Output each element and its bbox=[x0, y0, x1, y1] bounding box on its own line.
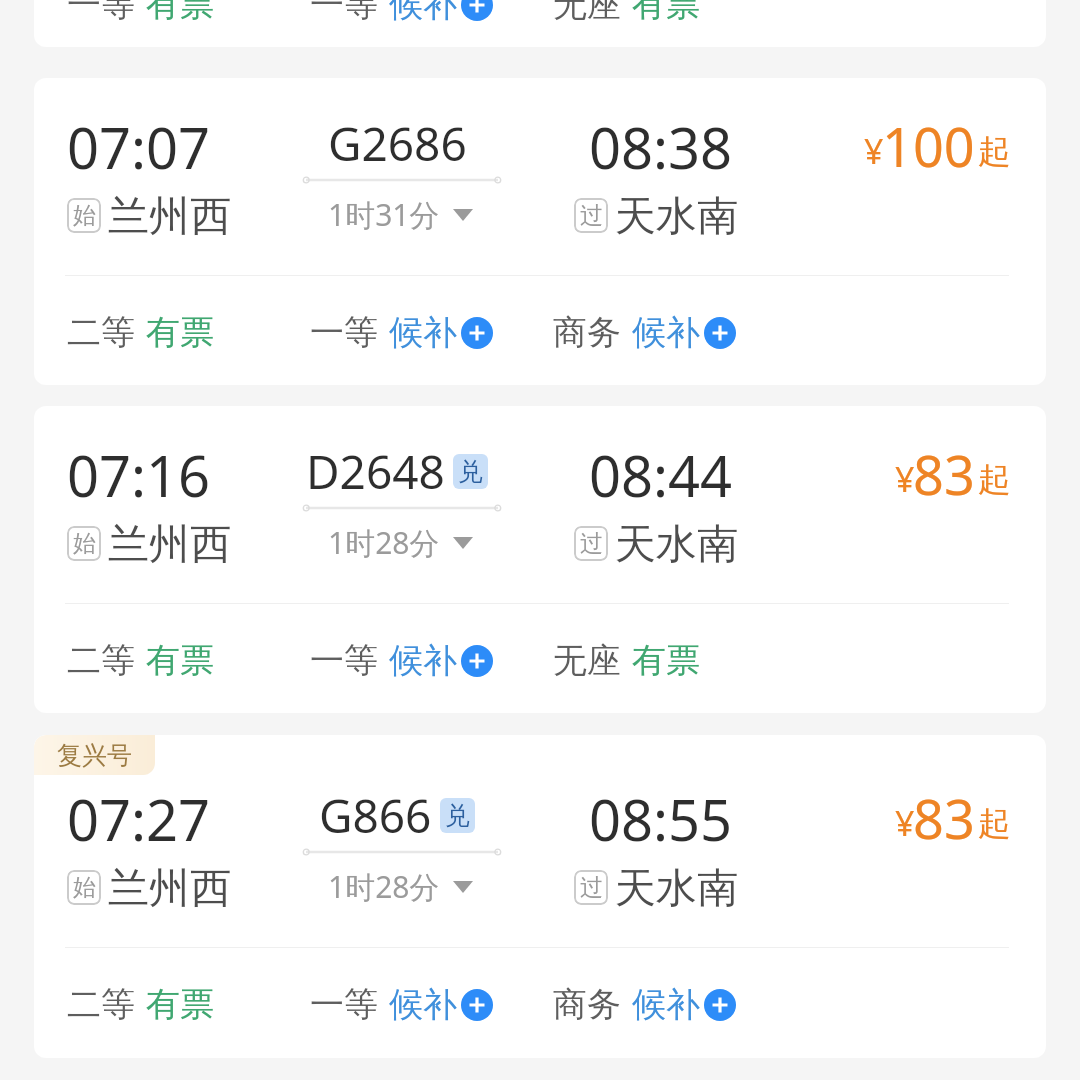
staticText: 无座 bbox=[553, 639, 621, 682]
button[interactable]: 一等 bbox=[67, 0, 214, 26]
staticText: 候补 bbox=[389, 0, 457, 26]
staticText: 商务 bbox=[553, 983, 621, 1026]
button[interactable]: 一等 bbox=[310, 0, 493, 26]
staticText: 天水南 bbox=[615, 191, 738, 243]
button[interactable]: 无座 bbox=[553, 0, 700, 26]
staticText: 二等 bbox=[67, 311, 135, 354]
staticText: 有票 bbox=[146, 639, 214, 682]
button[interactable]: 07:07 bbox=[34, 78, 1046, 385]
staticText: 起 bbox=[978, 131, 1011, 173]
staticText: 天水南 bbox=[615, 519, 738, 571]
button[interactable]: 候补购票 bbox=[704, 989, 736, 1021]
staticText: 过 bbox=[580, 201, 603, 230]
staticText: 一等 bbox=[67, 0, 135, 26]
button[interactable]: 二等 bbox=[67, 639, 214, 682]
staticText: 有票 bbox=[146, 983, 214, 1026]
button[interactable]: 商务 bbox=[553, 311, 736, 354]
staticText: 始 bbox=[73, 529, 96, 558]
staticText: 兰州西 bbox=[108, 519, 231, 571]
staticText: G866 bbox=[319, 784, 432, 847]
staticText: 过 bbox=[580, 529, 603, 558]
staticText: 兑 bbox=[458, 456, 483, 487]
button[interactable]: 二等 bbox=[67, 311, 214, 354]
button[interactable]: 候补购票 bbox=[461, 317, 493, 349]
staticText: 始 bbox=[73, 201, 96, 230]
button[interactable]: 候补购票 bbox=[461, 989, 493, 1021]
button[interactable]: 商务 bbox=[553, 983, 736, 1026]
staticText: 有票 bbox=[146, 311, 214, 354]
button[interactable]: 07:00 bbox=[34, 0, 1046, 47]
staticText: 有票 bbox=[632, 0, 700, 26]
staticText: 候补 bbox=[389, 983, 457, 1026]
staticText: 07:16 bbox=[67, 437, 211, 513]
staticText: 候补 bbox=[389, 311, 457, 354]
staticText: 复兴号 bbox=[57, 740, 132, 771]
staticText: ¥ bbox=[895, 800, 915, 846]
staticText: 一等 bbox=[310, 0, 378, 26]
staticText: 兰州西 bbox=[108, 191, 231, 243]
staticText: 始 bbox=[73, 873, 96, 902]
button[interactable]: 一等 bbox=[310, 639, 493, 682]
button[interactable]: 复兴号 bbox=[34, 735, 1046, 1058]
button[interactable]: 候补购票 bbox=[461, 0, 493, 21]
staticText: ¥ bbox=[864, 128, 884, 174]
button[interactable]: 二等 bbox=[67, 983, 214, 1026]
staticText: 二等 bbox=[67, 639, 135, 682]
staticText: D2648 bbox=[306, 440, 445, 503]
button[interactable]: 候补购票 bbox=[461, 645, 493, 677]
button[interactable]: 一等 bbox=[310, 311, 493, 354]
staticText: 起 bbox=[978, 459, 1011, 501]
button[interactable]: 07:16 bbox=[34, 406, 1046, 713]
staticText: 08:38 bbox=[589, 109, 733, 185]
staticText: 天水南 bbox=[615, 863, 738, 915]
staticText: 无座 bbox=[553, 0, 621, 26]
staticText: 起 bbox=[978, 803, 1011, 845]
staticText: 100 bbox=[882, 109, 975, 183]
staticText: 有票 bbox=[632, 639, 700, 682]
staticText: 83 bbox=[913, 437, 975, 511]
staticText: 08:55 bbox=[589, 781, 733, 857]
staticText: 07:27 bbox=[67, 781, 211, 857]
staticText: 1时28分 bbox=[328, 522, 440, 563]
button[interactable]: 候补购票 bbox=[704, 317, 736, 349]
staticText: 候补 bbox=[632, 983, 700, 1026]
staticText: 二等 bbox=[67, 983, 135, 1026]
button[interactable]: 无座 bbox=[553, 639, 700, 682]
staticText: 1时28分 bbox=[328, 866, 440, 907]
button[interactable]: 展开经停站 bbox=[266, 866, 534, 907]
button[interactable]: 展开经停站 bbox=[266, 194, 534, 235]
staticText: 商务 bbox=[553, 311, 621, 354]
button[interactable]: 一等 bbox=[310, 983, 493, 1026]
staticText: 一等 bbox=[310, 311, 378, 354]
staticText: 07:07 bbox=[67, 109, 211, 185]
staticText: 一等 bbox=[310, 983, 378, 1026]
staticText: ¥ bbox=[895, 456, 915, 502]
staticText: 过 bbox=[580, 873, 603, 902]
staticText: 1时31分 bbox=[328, 194, 440, 235]
button[interactable]: 展开经停站 bbox=[266, 522, 534, 563]
staticText: 一等 bbox=[310, 639, 378, 682]
staticText: 兰州西 bbox=[108, 863, 231, 915]
staticText: 有票 bbox=[146, 0, 214, 26]
staticText: 候补 bbox=[389, 639, 457, 682]
staticText: 兑 bbox=[445, 800, 470, 831]
staticText: G2686 bbox=[328, 112, 467, 175]
staticText: 候补 bbox=[632, 311, 700, 354]
staticText: 08:44 bbox=[589, 437, 733, 513]
staticText: 83 bbox=[913, 781, 975, 855]
